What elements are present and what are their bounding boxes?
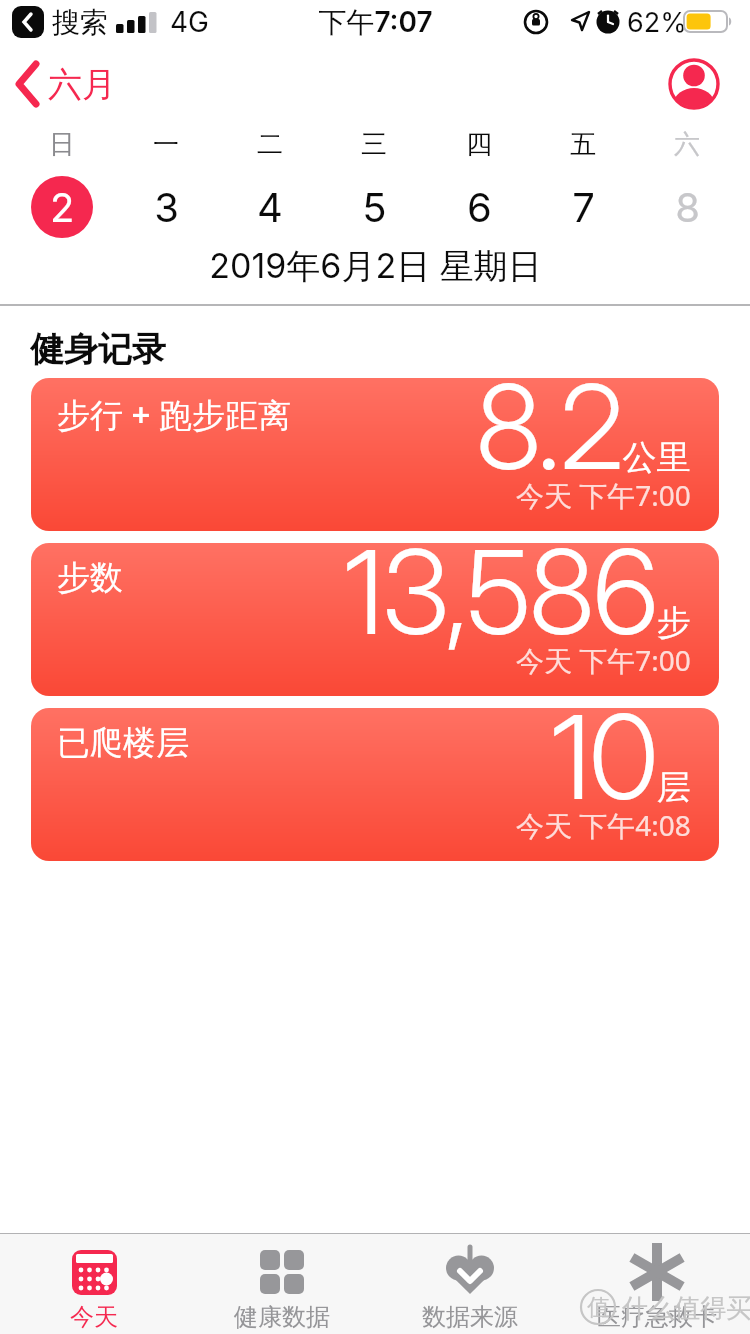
staticText: 已爬楼层 — [57, 722, 189, 764]
staticText: 3 — [154, 183, 179, 231]
staticText: 四 — [466, 128, 492, 160]
staticText: 五 — [570, 128, 596, 160]
button[interactable] — [668, 58, 720, 110]
staticText: 8 — [675, 183, 700, 231]
staticText: 六月 — [48, 63, 116, 106]
staticText: 8.2公里 — [476, 378, 691, 497]
staticText: 13,586步 — [344, 543, 691, 662]
staticText: 步数 — [57, 557, 123, 599]
staticText: 数据来源 — [422, 1302, 518, 1332]
staticText: 5 — [362, 183, 387, 231]
staticText: 健身记录 — [30, 328, 166, 368]
staticText: 今天 下午7:00 — [516, 641, 691, 679]
staticText: 健康数据 — [234, 1302, 330, 1332]
staticText: 什么值得买 — [622, 1292, 750, 1322]
staticText: 4G — [170, 5, 209, 39]
button[interactable]: 4 — [239, 176, 301, 238]
staticText: 今天 下午7:00 — [516, 476, 691, 514]
staticText: 二 — [257, 128, 283, 160]
button[interactable]: 已爬楼层 — [31, 708, 719, 861]
staticText: 10层 — [551, 708, 691, 827]
staticText: 搜索 — [52, 5, 108, 40]
button[interactable]: 6 — [448, 176, 510, 238]
staticText: 7 — [572, 183, 595, 231]
button[interactable]: 步行 + 跑步距离 — [31, 378, 719, 531]
button[interactable]: 数据来源 — [376, 1233, 564, 1334]
staticText: 六 — [674, 128, 700, 160]
button[interactable] — [12, 6, 44, 38]
button[interactable]: 7 — [552, 176, 614, 238]
staticText: 今天 — [70, 1302, 118, 1332]
staticText: 62% — [627, 6, 687, 39]
staticText: 一 — [153, 128, 179, 160]
button[interactable]: 8 — [656, 176, 718, 238]
staticText: 日 — [49, 128, 75, 160]
button[interactable]: 步数 — [31, 543, 719, 696]
staticText: 下午7:07 — [318, 5, 433, 40]
button[interactable]: 今天 — [0, 1233, 188, 1334]
staticText: 今天 下午4:08 — [516, 806, 691, 844]
button[interactable]: 医疗急救卡 — [564, 1233, 750, 1334]
button[interactable]: 5 — [343, 176, 405, 238]
staticText: 值 — [587, 1293, 610, 1321]
staticText: 4 — [257, 183, 283, 231]
button[interactable]: 2 — [31, 176, 93, 238]
staticText: 三 — [361, 128, 387, 160]
button[interactable]: 3 — [135, 176, 197, 238]
button[interactable]: 六月 — [10, 56, 140, 112]
staticText: 2 — [50, 183, 75, 231]
button[interactable]: 健康数据 — [188, 1233, 376, 1334]
staticText: 6 — [467, 183, 492, 231]
staticText: 2019年6月2日 星期日 — [209, 245, 542, 288]
staticText: 步行 + 跑步距离 — [57, 392, 292, 437]
staticText: 医疗急救卡 — [597, 1302, 717, 1332]
